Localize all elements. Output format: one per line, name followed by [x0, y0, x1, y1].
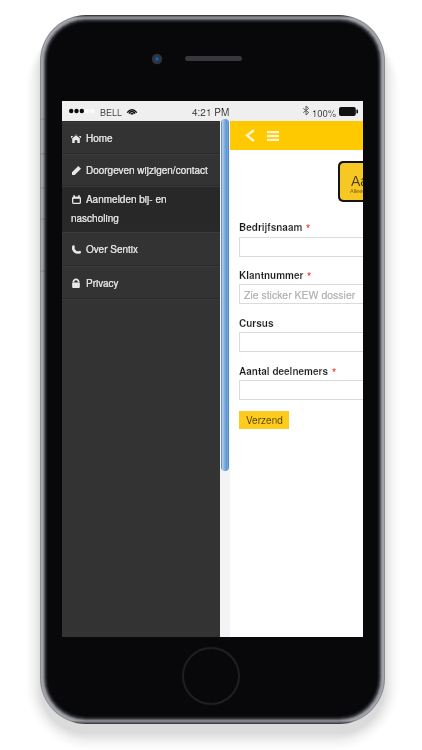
button[interactable]: Over Sentix [62, 233, 220, 265]
staticText: * [306, 220, 311, 236]
staticText: * [332, 364, 337, 380]
staticText: Over Sentix [86, 242, 139, 256]
staticText: 4:21 PM [192, 105, 230, 119]
button[interactable]: Menu [260, 121, 286, 150]
staticText: nascholing [71, 211, 119, 225]
button[interactable] [239, 332, 363, 352]
button[interactable] [239, 380, 363, 400]
button[interactable]: Aanmelden bij- en [62, 187, 220, 231]
button[interactable]: Privacy [62, 267, 220, 298]
staticText: Aanmelden bij- en [86, 192, 167, 206]
staticText: Home [86, 131, 113, 145]
staticText: Aantal deelnemers [239, 364, 329, 378]
staticText: Aa [351, 173, 363, 189]
staticText: * [307, 268, 312, 284]
staticText: Cursus [239, 316, 274, 330]
staticText: Klantnummer [239, 268, 304, 282]
button[interactable]: Doorgeven wijzigen/contact [62, 155, 220, 185]
button[interactable] [239, 237, 363, 257]
staticText: BELL [100, 106, 123, 119]
button[interactable]: Home [62, 123, 220, 153]
button[interactable]: Zie sticker KEW dossier [239, 284, 363, 304]
button[interactable]: Aa [340, 163, 363, 200]
button[interactable]: Verzend [239, 411, 289, 429]
staticText: Zie sticker KEW dossier [244, 287, 356, 302]
staticText: Doorgeven wijzigen/contact [86, 163, 208, 177]
staticText: Privacy [86, 276, 119, 290]
staticText: Bedrijfsnaam [239, 220, 303, 234]
staticText: Verzend [246, 413, 283, 427]
button[interactable]: Back [230, 121, 260, 150]
staticText: Alleen [350, 188, 363, 194]
staticText: 100% [312, 106, 337, 120]
